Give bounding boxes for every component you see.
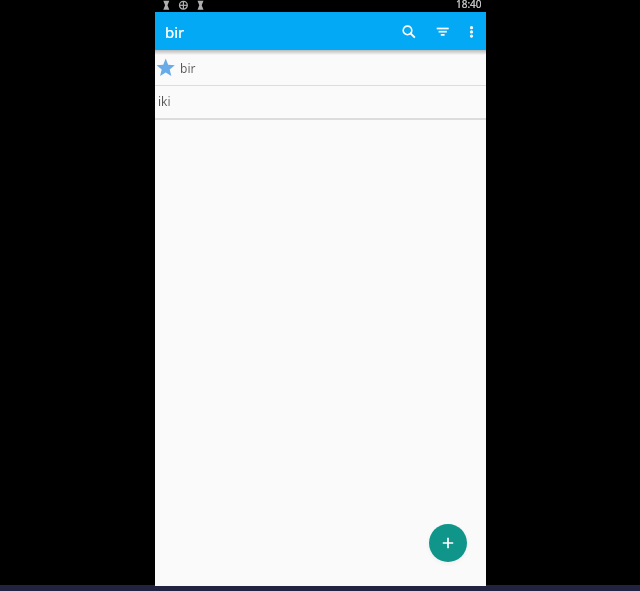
staticText: iki (158, 93, 171, 109)
staticText: bir (180, 60, 196, 76)
button[interactable] (393, 16, 423, 46)
button[interactable] (429, 524, 467, 562)
staticText: bir (165, 22, 185, 42)
staticText: 18:40 (456, 0, 482, 11)
button[interactable] (458, 16, 485, 46)
button[interactable]: bir (155, 50, 486, 85)
button[interactable]: iki (155, 86, 486, 118)
button[interactable] (428, 16, 458, 46)
